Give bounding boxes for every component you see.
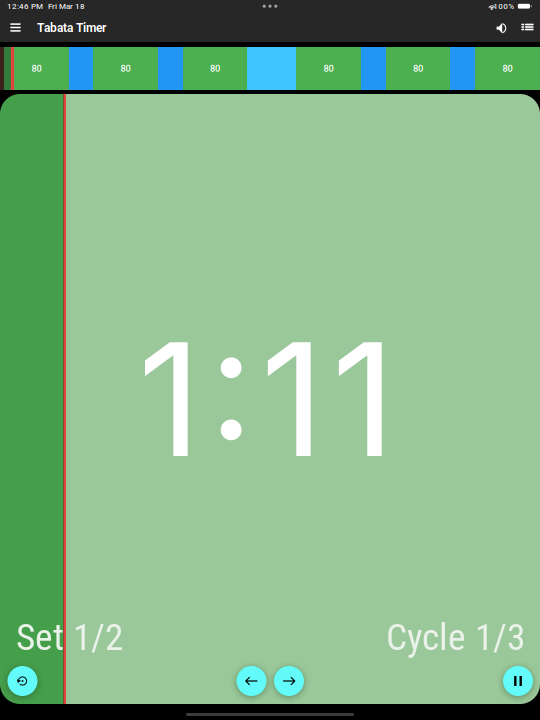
staticText: Tabata Timer [37, 21, 106, 35]
staticText: 100% [493, 1, 514, 11]
staticText: 80 [210, 63, 220, 74]
button[interactable]: Workout list [513, 16, 539, 42]
staticText: 80 [120, 63, 130, 74]
button[interactable]: Next [274, 666, 304, 696]
button[interactable]: Previous [236, 666, 266, 696]
staticText: 80 [31, 63, 41, 74]
staticText: Set 1/2 [16, 615, 123, 659]
staticText: 80 [413, 63, 423, 74]
staticText: Cycle 1/3 [386, 615, 525, 659]
staticText: 80 [323, 63, 333, 74]
staticText: 80 [502, 63, 512, 74]
button[interactable]: Pause [503, 666, 533, 696]
staticText: 12:46 PM [7, 1, 43, 11]
button[interactable]: Menu [3, 16, 28, 42]
button[interactable]: Restart [7, 666, 37, 696]
staticText: 1:11 [137, 304, 395, 494]
staticText: Fri Mar 18 [48, 1, 85, 11]
button[interactable]: Sound [487, 16, 513, 42]
